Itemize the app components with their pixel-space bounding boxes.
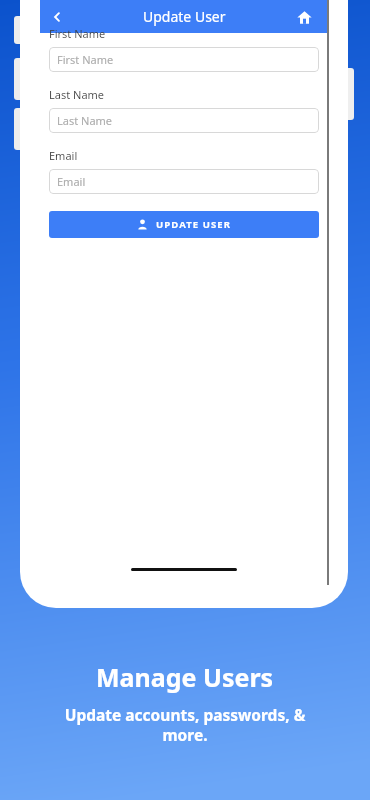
staticText: UPDATE USER: [156, 218, 232, 231]
staticText: Email: [49, 148, 78, 163]
button[interactable]: Home: [290, 3, 318, 31]
staticText: Last Name: [57, 113, 113, 128]
staticText: Update accounts, passwords, & more.: [40, 704, 330, 746]
button[interactable]: Last Name: [49, 108, 319, 133]
button[interactable]: Email: [49, 169, 319, 194]
staticText: Email: [57, 174, 86, 189]
button[interactable]: Back: [40, 0, 74, 33]
button[interactable]: UPDATE USER: [49, 211, 319, 238]
staticText: First Name: [57, 52, 114, 67]
button[interactable]: First Name: [49, 47, 319, 72]
staticText: Manage Users: [96, 660, 274, 694]
staticText: First Name: [49, 26, 106, 41]
staticText: Update User: [143, 7, 226, 26]
staticText: Last Name: [49, 87, 105, 102]
